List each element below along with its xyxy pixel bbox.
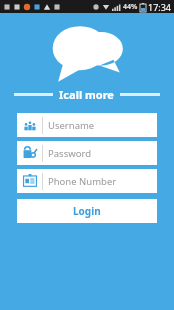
button[interactable]: Login [17, 199, 157, 223]
staticText: Phone Number [48, 175, 117, 188]
staticText: Icall more [59, 87, 114, 102]
staticText: 17:34 [148, 1, 172, 13]
staticText: Login [73, 204, 101, 218]
button[interactable]: Phone Number [17, 169, 157, 193]
staticText: Username [48, 119, 95, 132]
button[interactable]: Username [17, 113, 157, 137]
button[interactable]: Password [17, 141, 157, 165]
staticText: Password [48, 147, 91, 160]
staticText: 44% [123, 2, 138, 12]
